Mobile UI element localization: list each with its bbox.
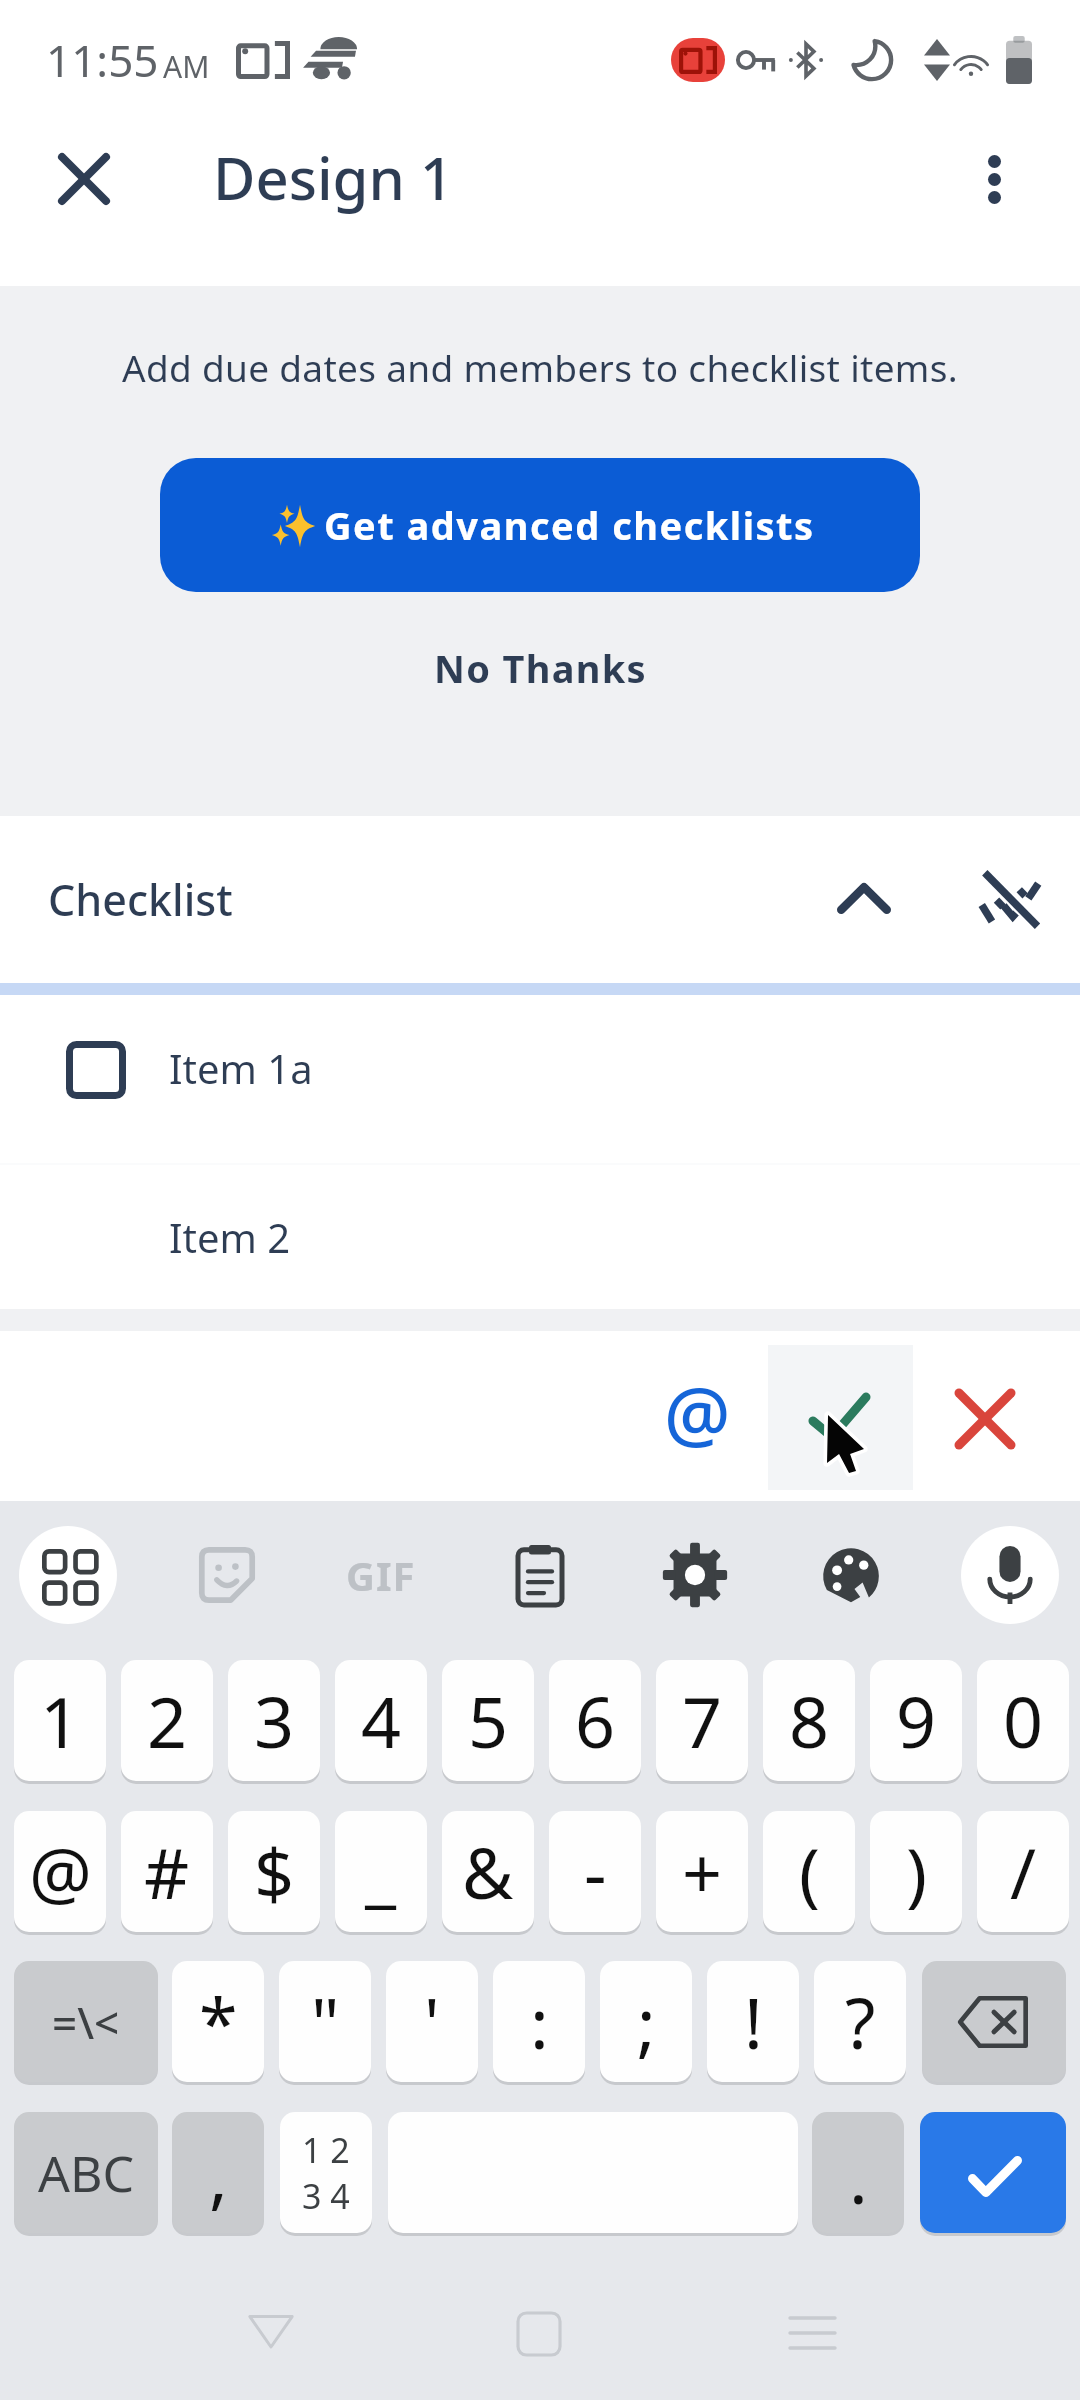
staticText: $: [254, 1824, 295, 1919]
staticText: @: [664, 1364, 731, 1464]
button[interactable]: 9: [870, 1660, 962, 1781]
button[interactable]: (: [763, 1811, 855, 1932]
button[interactable]: Apps: [19, 1526, 117, 1624]
staticText: 11:55: [46, 30, 159, 90]
button[interactable]: Close: [40, 135, 128, 223]
button[interactable]: Settings: [646, 1526, 744, 1624]
button[interactable]: _: [335, 1811, 427, 1932]
button[interactable]: Home: [469, 2264, 609, 2400]
button[interactable]: Save item: [768, 1345, 913, 1490]
staticText: 0: [1003, 1673, 1044, 1768]
staticText: No Thanks: [434, 642, 647, 694]
button[interactable]: Symbols: [14, 1961, 158, 2082]
staticText: ,: [209, 2127, 228, 2222]
button[interactable]: Hide checked items: [958, 850, 1058, 950]
staticText: 6: [575, 1673, 616, 1768]
button[interactable]: More options: [950, 135, 1038, 223]
button[interactable]: Recent apps: [742, 2263, 882, 2400]
button[interactable]: ": [279, 1961, 371, 2082]
button[interactable]: Item 1a: [0, 995, 1080, 1163]
staticText: ': [424, 1974, 440, 2069]
button[interactable]: Letters: [14, 2112, 158, 2233]
staticText: Item 2: [169, 1210, 291, 1264]
staticText: Design 1: [213, 138, 454, 217]
staticText: 3: [254, 1673, 295, 1768]
button[interactable]: Numbers: [280, 2112, 372, 2233]
button[interactable]: ): [870, 1811, 962, 1932]
button[interactable]: 6: [549, 1660, 641, 1781]
button[interactable]: &: [442, 1811, 534, 1932]
staticText: _: [365, 1824, 397, 1919]
button[interactable]: 8: [763, 1660, 855, 1781]
button[interactable]: Stickers: [178, 1526, 276, 1624]
button[interactable]: Collapse checklist: [814, 850, 914, 950]
button[interactable]: ?: [814, 1961, 906, 2082]
button[interactable]: ': [386, 1961, 478, 2082]
staticText: /: [1010, 1824, 1037, 1919]
staticText: @: [29, 1824, 92, 1919]
button[interactable]: No Thanks: [414, 630, 667, 706]
staticText: Get advanced checklists: [324, 499, 815, 551]
staticText: +: [682, 1824, 723, 1919]
staticText: AM: [163, 46, 210, 87]
button[interactable]: 1: [14, 1660, 106, 1781]
staticText: 2: [147, 1673, 188, 1768]
staticText: ": [311, 1974, 340, 2069]
button[interactable]: Mention: [642, 1364, 752, 1474]
button[interactable]: Enter: [920, 2112, 1066, 2233]
staticText: #: [144, 1824, 190, 1919]
staticText: Add due dates and members to checklist i…: [122, 342, 958, 392]
button[interactable]: Voice input: [961, 1526, 1059, 1624]
staticText: 3 4: [302, 2173, 350, 2219]
staticText: 1: [40, 1673, 81, 1768]
staticText: &: [462, 1824, 514, 1919]
staticText: :: [530, 1974, 549, 2069]
button[interactable]: +: [656, 1811, 748, 1932]
button[interactable]: Backspace: [922, 1961, 1066, 2082]
staticText: 1 2: [302, 2127, 350, 2173]
button[interactable]: -: [549, 1811, 641, 1932]
staticText: .: [849, 2129, 868, 2224]
staticText: !: [744, 1974, 763, 2069]
staticText: ): [906, 1824, 927, 1919]
staticText: =\<: [52, 1992, 120, 2052]
staticText: 4: [361, 1673, 402, 1768]
staticText: ;: [637, 1974, 656, 2069]
staticText: (: [799, 1824, 820, 1919]
button[interactable]: Back: [201, 2261, 341, 2400]
button[interactable]: Clipboard: [491, 1526, 589, 1624]
button[interactable]: 4: [335, 1660, 427, 1781]
button[interactable]: Period: [812, 2112, 904, 2233]
staticText: -: [584, 1824, 607, 1919]
button[interactable]: !: [707, 1961, 799, 2082]
button[interactable]: Cancel: [930, 1364, 1040, 1474]
button[interactable]: /: [977, 1811, 1069, 1932]
button[interactable]: Item 2: [0, 1165, 1080, 1309]
button[interactable]: $: [228, 1811, 320, 1932]
button[interactable]: 5: [442, 1660, 534, 1781]
staticText: Item 1a: [169, 1041, 313, 1095]
button[interactable]: Comma: [172, 2112, 264, 2233]
button[interactable]: 7: [656, 1660, 748, 1781]
staticText: Checklist: [48, 870, 233, 929]
button[interactable]: *: [172, 1961, 264, 2082]
button[interactable]: Themes: [802, 1526, 900, 1624]
button[interactable]: 3: [228, 1660, 320, 1781]
button[interactable]: GIF: [332, 1526, 430, 1624]
button[interactable]: @: [14, 1811, 106, 1932]
staticText: ABC: [38, 2139, 135, 2207]
button[interactable]: 0: [977, 1660, 1069, 1781]
staticText: 7: [682, 1673, 723, 1768]
button[interactable]: #: [121, 1811, 213, 1932]
staticText: 8: [789, 1673, 830, 1768]
button[interactable]: 2: [121, 1660, 213, 1781]
staticText: ?: [845, 1974, 876, 2069]
button[interactable]: ;: [600, 1961, 692, 2082]
button[interactable]: :: [493, 1961, 585, 2082]
staticText: 5: [468, 1673, 509, 1768]
staticText: *: [199, 1974, 238, 2069]
staticText: 9: [896, 1673, 937, 1768]
button[interactable]: Get advanced checklists: [160, 458, 920, 592]
staticText: GIF: [346, 1548, 416, 1602]
